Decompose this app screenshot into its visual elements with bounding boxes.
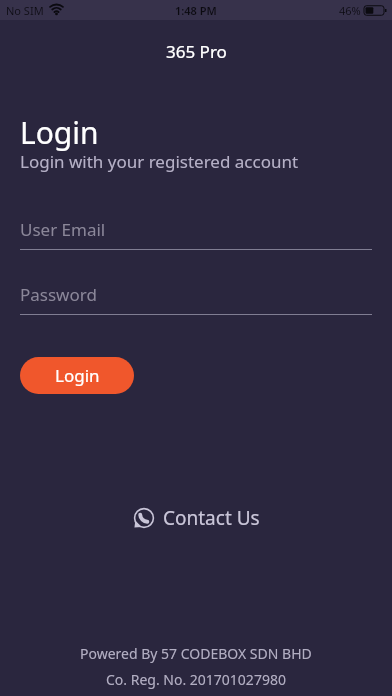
staticText: 46% bbox=[339, 3, 361, 18]
staticText: 365 Pro bbox=[166, 40, 227, 63]
staticText: 1:48 PM bbox=[175, 3, 217, 18]
staticText: Co. Reg. No. 201701027980 bbox=[106, 670, 286, 689]
staticText: User Email bbox=[20, 218, 106, 241]
staticText: Powered By 57 CODEBOX SDN BHD bbox=[80, 644, 312, 663]
button[interactable]: Password bbox=[20, 283, 372, 315]
staticText: Contact Us bbox=[163, 505, 260, 531]
staticText: No SIM bbox=[6, 3, 44, 18]
staticText: Login with your registered account bbox=[20, 150, 299, 173]
button[interactable]: Contact Us bbox=[0, 505, 392, 531]
staticText: Login bbox=[55, 364, 100, 387]
button[interactable]: Login bbox=[20, 357, 134, 394]
staticText: Password bbox=[20, 283, 97, 306]
staticText: Login bbox=[20, 112, 99, 153]
button[interactable]: User Email bbox=[20, 218, 372, 250]
